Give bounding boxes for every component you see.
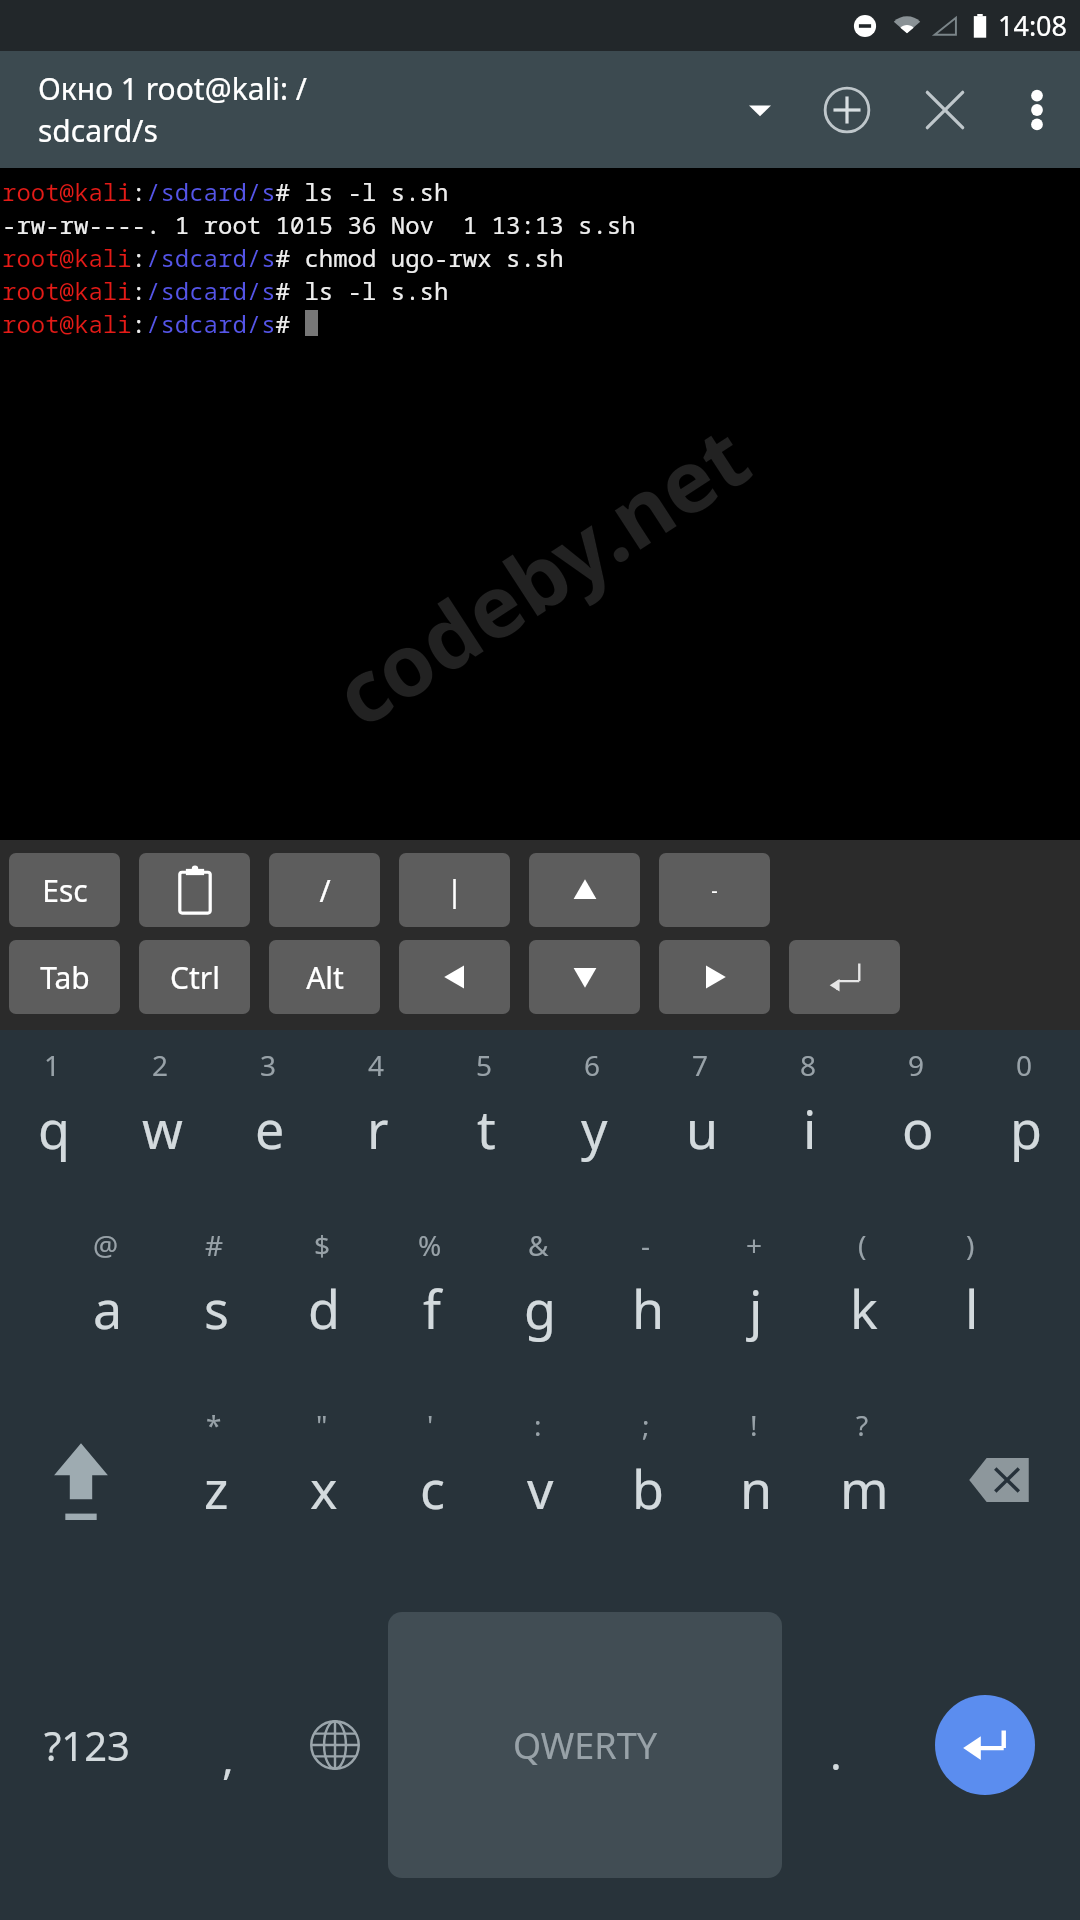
button[interactable]: 5 bbox=[432, 1030, 540, 1210]
staticText: 9 bbox=[908, 1046, 925, 1084]
staticText: j bbox=[749, 1273, 763, 1344]
button[interactable]: Arrow right bbox=[659, 940, 770, 1014]
button[interactable]: : bbox=[486, 1390, 594, 1570]
staticText: * bbox=[206, 1406, 222, 1444]
staticText: ! bbox=[750, 1406, 758, 1444]
button[interactable]: Select window bbox=[722, 51, 798, 168]
button[interactable]: Tab bbox=[9, 940, 120, 1014]
staticText: + bbox=[746, 1226, 763, 1264]
staticText: ) bbox=[966, 1226, 975, 1264]
button[interactable]: ; bbox=[594, 1390, 702, 1570]
button[interactable]: Enter bbox=[789, 940, 900, 1014]
staticText: " bbox=[316, 1406, 328, 1444]
button[interactable]: - bbox=[594, 1210, 702, 1390]
button[interactable]: . bbox=[782, 1570, 889, 1920]
staticText: ; bbox=[642, 1406, 650, 1444]
staticText: k bbox=[850, 1273, 878, 1344]
staticText: q bbox=[38, 1093, 70, 1164]
staticText: # bbox=[205, 1226, 224, 1264]
button[interactable]: ' bbox=[378, 1390, 486, 1570]
button[interactable]: Backspace bbox=[918, 1390, 1080, 1570]
button[interactable]: Enter bbox=[935, 1695, 1035, 1795]
button[interactable]: 6 bbox=[540, 1030, 648, 1210]
staticText: 1 bbox=[44, 1046, 61, 1084]
staticText: - bbox=[711, 877, 718, 904]
staticText: Ctrl bbox=[170, 957, 220, 998]
button[interactable]: Shift bbox=[0, 1390, 162, 1570]
button[interactable]: ) bbox=[918, 1210, 1026, 1390]
button[interactable]: Change language bbox=[281, 1570, 388, 1920]
button[interactable]: # bbox=[162, 1210, 270, 1390]
button[interactable]: % bbox=[378, 1210, 486, 1390]
staticText: ( bbox=[858, 1226, 867, 1264]
button[interactable]: 2 bbox=[108, 1030, 216, 1210]
staticText: 4 bbox=[368, 1046, 385, 1084]
button[interactable]: $ bbox=[270, 1210, 378, 1390]
staticText: b bbox=[632, 1453, 664, 1524]
staticText: g bbox=[524, 1273, 556, 1344]
staticText: root@kali:/sdcard/s# bbox=[2, 307, 305, 340]
staticText: % bbox=[418, 1226, 442, 1264]
button[interactable]: " bbox=[270, 1390, 378, 1570]
button[interactable]: + bbox=[702, 1210, 810, 1390]
staticText: & bbox=[528, 1226, 549, 1264]
staticText: Alt bbox=[306, 957, 344, 998]
button[interactable]: Arrow up bbox=[529, 853, 640, 927]
staticText: 7 bbox=[692, 1046, 709, 1084]
staticText: i bbox=[803, 1093, 817, 1164]
staticText: 3 bbox=[260, 1046, 277, 1084]
button[interactable]: Ctrl bbox=[139, 940, 250, 1014]
staticText: , bbox=[222, 1727, 234, 1787]
button[interactable]: - bbox=[659, 853, 770, 927]
staticText: 2 bbox=[152, 1046, 169, 1084]
button[interactable]: 7 bbox=[648, 1030, 756, 1210]
staticText: v bbox=[527, 1453, 554, 1524]
button[interactable]: Окно 1 root@kali: / sdcard/s bbox=[0, 51, 722, 168]
staticText: ?123 bbox=[44, 1718, 130, 1772]
button[interactable]: @ bbox=[54, 1210, 162, 1390]
button[interactable]: 8 bbox=[756, 1030, 864, 1210]
button[interactable]: 9 bbox=[864, 1030, 972, 1210]
staticText: / bbox=[319, 870, 331, 911]
button[interactable]: More options bbox=[994, 51, 1080, 168]
button[interactable]: Arrow left bbox=[399, 940, 510, 1014]
button[interactable]: New window bbox=[798, 51, 896, 168]
button[interactable]: | bbox=[399, 853, 510, 927]
button[interactable]: , bbox=[174, 1570, 281, 1920]
button[interactable]: Esc bbox=[9, 853, 120, 927]
button[interactable]: Alt bbox=[269, 940, 380, 1014]
button[interactable]: ! bbox=[702, 1390, 810, 1570]
staticText: Окно 1 root@kali: / sdcard/s bbox=[38, 68, 307, 151]
button[interactable]: ?123 bbox=[0, 1570, 174, 1920]
staticText: ? bbox=[856, 1406, 869, 1444]
staticText: e bbox=[255, 1093, 285, 1164]
button[interactable]: 1 bbox=[0, 1030, 108, 1210]
button[interactable]: & bbox=[486, 1210, 594, 1390]
button[interactable]: 0 bbox=[972, 1030, 1080, 1210]
staticText: t bbox=[477, 1093, 496, 1164]
button[interactable]: Close window bbox=[896, 51, 994, 168]
button[interactable]: Arrow down bbox=[529, 940, 640, 1014]
button[interactable]: * bbox=[162, 1390, 270, 1570]
staticText: root@kali:/sdcard/s# ls -l s.sh bbox=[2, 274, 449, 307]
button[interactable]: ? bbox=[810, 1390, 918, 1570]
staticText: 5 bbox=[476, 1046, 493, 1084]
button[interactable]: 4 bbox=[324, 1030, 432, 1210]
staticText: h bbox=[632, 1273, 665, 1344]
button[interactable]: / bbox=[269, 853, 380, 927]
button[interactable]: 3 bbox=[216, 1030, 324, 1210]
staticText: . bbox=[830, 1723, 842, 1783]
staticText: n bbox=[740, 1453, 773, 1524]
staticText: m bbox=[840, 1453, 889, 1524]
button[interactable]: ( bbox=[810, 1210, 918, 1390]
staticText: - bbox=[641, 1226, 651, 1264]
staticText: | bbox=[446, 870, 463, 911]
staticText: QWERTY bbox=[513, 1721, 658, 1770]
button[interactable]: Paste bbox=[139, 853, 250, 927]
button[interactable]: QWERTY bbox=[388, 1612, 782, 1878]
staticText: -rw-rw----. 1 root 1015 36 Nov 1 13:13 s… bbox=[2, 208, 636, 241]
staticText: 14:08 bbox=[998, 7, 1068, 44]
staticText: $ bbox=[314, 1226, 331, 1264]
staticText: c bbox=[420, 1453, 445, 1524]
staticText: 8 bbox=[800, 1046, 817, 1084]
